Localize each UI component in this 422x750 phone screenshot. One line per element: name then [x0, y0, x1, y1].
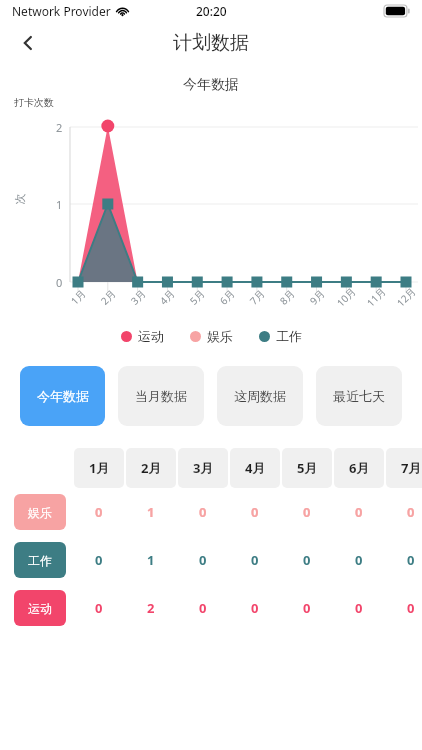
- staticText: 0: [95, 503, 103, 521]
- staticText: 20:20: [196, 3, 227, 19]
- staticText: 娱乐: [207, 328, 233, 344]
- staticText: 7月: [246, 286, 268, 308]
- staticText: 0: [251, 503, 259, 521]
- staticText: 3月: [193, 459, 214, 477]
- staticText: 0: [355, 551, 363, 569]
- button[interactable]: Back: [8, 23, 48, 63]
- staticText: 6月: [216, 286, 238, 308]
- button[interactable]: 工作: [14, 542, 66, 578]
- staticText: 11月: [363, 284, 389, 310]
- button[interactable]: 5月: [282, 448, 332, 488]
- staticText: 0: [407, 599, 415, 617]
- staticText: 最近七天: [333, 388, 385, 404]
- staticText: 1月: [89, 459, 110, 477]
- staticText: 0: [199, 599, 207, 617]
- staticText: 0: [303, 503, 311, 521]
- staticText: 2: [147, 599, 155, 617]
- staticText: 0: [355, 599, 363, 617]
- staticText: 打卡次数: [14, 96, 54, 109]
- staticText: Network Provider: [12, 3, 111, 19]
- staticText: 工作: [28, 553, 52, 568]
- staticText: 5月: [186, 286, 208, 308]
- staticText: 8月: [276, 286, 298, 308]
- staticText: 0: [199, 503, 207, 521]
- staticText: 7月: [401, 459, 422, 477]
- staticText: 0: [95, 599, 103, 617]
- staticText: 2月: [97, 286, 119, 308]
- button[interactable]: 4月: [230, 448, 280, 488]
- button[interactable]: 2月: [126, 448, 176, 488]
- button[interactable]: 当月数据: [118, 366, 204, 426]
- staticText: 当月数据: [135, 388, 187, 404]
- staticText: 9月: [306, 286, 328, 308]
- staticText: 2: [56, 120, 63, 135]
- staticText: 0: [56, 275, 63, 290]
- button[interactable]: 今年数据: [20, 366, 105, 426]
- staticText: 0: [251, 599, 259, 617]
- staticText: 0: [303, 599, 311, 617]
- staticText: 4月: [245, 459, 266, 477]
- staticText: 娱乐: [28, 505, 52, 520]
- button[interactable]: 1月: [74, 448, 124, 488]
- staticText: 2月: [141, 459, 162, 477]
- staticText: 计划数据: [173, 31, 249, 55]
- staticText: 0: [303, 551, 311, 569]
- staticText: 6月: [349, 459, 370, 477]
- staticText: 1: [147, 503, 155, 521]
- button[interactable]: 7月: [386, 448, 422, 488]
- staticText: 3月: [127, 286, 149, 308]
- button[interactable]: 这周数据: [217, 366, 303, 426]
- staticText: 这周数据: [234, 388, 286, 404]
- staticText: 10月: [333, 284, 359, 310]
- staticText: 12月: [393, 284, 419, 310]
- staticText: 1: [56, 197, 63, 212]
- button[interactable]: 最近七天: [316, 366, 402, 426]
- staticText: 0: [251, 551, 259, 569]
- button[interactable]: 运动: [14, 590, 66, 626]
- staticText: 4月: [156, 286, 178, 308]
- staticText: 工作: [276, 328, 302, 344]
- staticText: 今年数据: [183, 76, 239, 94]
- staticText: 1月: [67, 286, 89, 308]
- staticText: 0: [199, 551, 207, 569]
- staticText: 今年数据: [37, 388, 89, 404]
- staticText: 运动: [28, 601, 52, 616]
- staticText: 0: [407, 551, 415, 569]
- staticText: 1: [147, 551, 155, 569]
- button[interactable]: 6月: [334, 448, 384, 488]
- staticText: 次: [12, 193, 26, 204]
- staticText: 0: [95, 551, 103, 569]
- staticText: 5月: [297, 459, 318, 477]
- staticText: 0: [407, 503, 415, 521]
- staticText: 0: [355, 503, 363, 521]
- button[interactable]: 娱乐: [14, 494, 66, 530]
- button[interactable]: 3月: [178, 448, 228, 488]
- staticText: 运动: [138, 328, 164, 344]
